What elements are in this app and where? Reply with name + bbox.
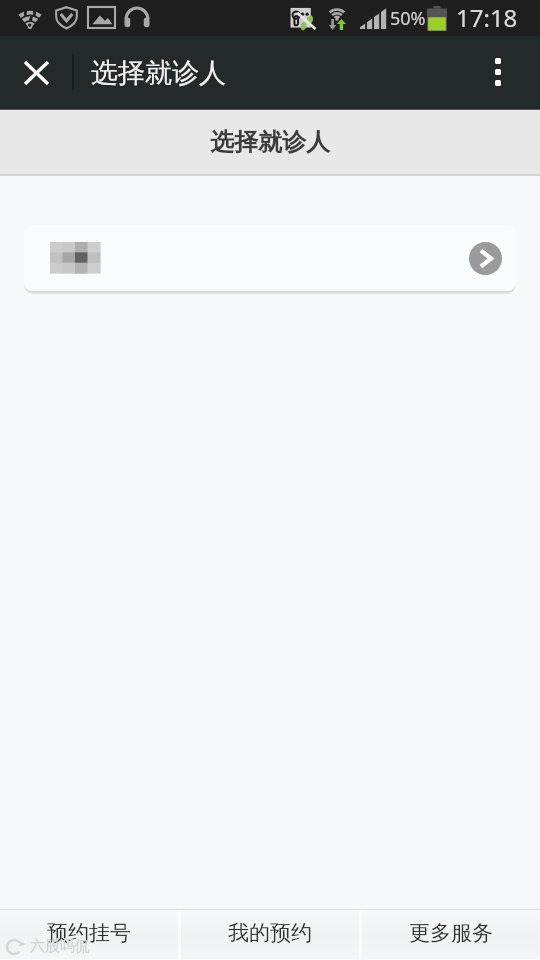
button[interactable]: More options [470,36,526,108]
button[interactable]: Open patient [24,225,516,291]
button[interactable]: Close [6,36,66,108]
staticText: 50% [390,6,426,31]
staticText: 更多服务 [409,920,493,946]
button[interactable]: 预约挂号 [0,911,178,959]
staticText: 选择就诊人 [210,127,330,157]
staticText: 我的预约 [228,920,312,946]
button[interactable]: 更多服务 [362,911,540,959]
staticText: 17:18 [456,1,518,34]
staticText: 预约挂号 [47,920,131,946]
other: Open patient [469,242,502,275]
staticText: 六股吗侃 [30,937,90,956]
button[interactable]: 我的预约 [181,911,359,959]
staticText: 选择就诊人 [91,56,226,90]
